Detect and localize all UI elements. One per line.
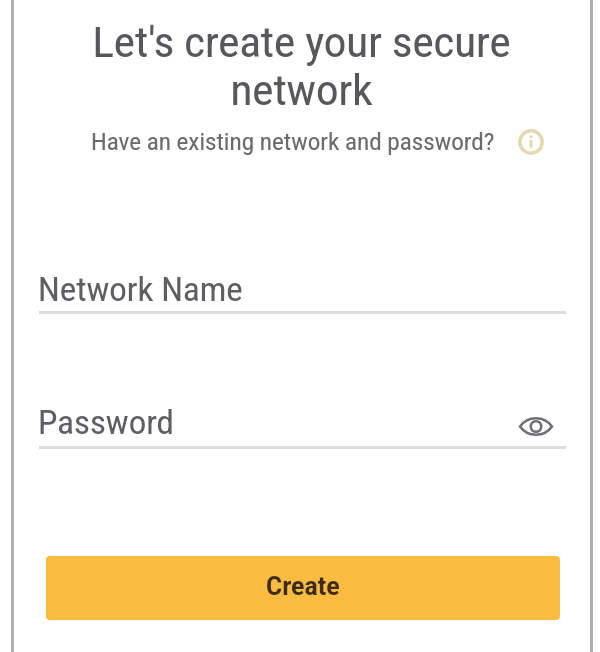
button[interactable]: Create bbox=[46, 556, 560, 620]
staticText: Network Name bbox=[38, 270, 243, 309]
button[interactable]: Network Name bbox=[39, 262, 566, 314]
staticText: Password bbox=[38, 403, 174, 442]
staticText: Let's create your secure network bbox=[53, 18, 550, 115]
button[interactable]: Info bbox=[516, 127, 546, 157]
staticText: Create bbox=[266, 571, 340, 601]
button[interactable]: Password bbox=[39, 395, 566, 449]
button[interactable]: Show password bbox=[518, 408, 554, 444]
button[interactable]: Have an existing network and password? bbox=[91, 128, 495, 156]
